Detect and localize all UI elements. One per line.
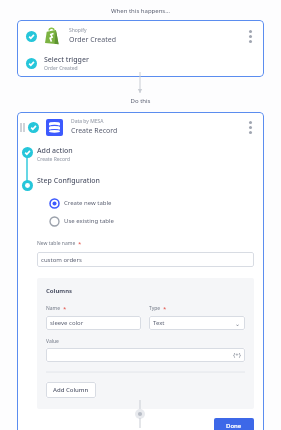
staticText: Text — [153, 319, 235, 327]
button[interactable]: Data by MESA — [17, 112, 264, 142]
staticText: sleeve color — [50, 319, 137, 327]
button[interactable]: Add step — [135, 409, 145, 419]
staticText: Order Created — [44, 65, 78, 72]
staticText: * — [78, 240, 82, 248]
staticText: Columns — [46, 287, 73, 295]
button[interactable]: Select trigger — [17, 52, 264, 74]
staticText: When this happens… — [0, 7, 281, 15]
button[interactable]: custom orders — [37, 252, 254, 267]
staticText: {+} — [233, 351, 241, 359]
staticText: Create Record — [71, 126, 118, 136]
staticText: Use existing table — [64, 217, 114, 225]
staticText: Name — [46, 305, 61, 312]
button[interactable]: Text — [149, 316, 245, 330]
button[interactable]: Add action — [37, 146, 254, 163]
button[interactable]: Add Column — [46, 382, 96, 398]
button[interactable]: Done — [214, 418, 254, 430]
staticText: ⌄ — [235, 320, 241, 327]
staticText: * — [63, 305, 67, 313]
staticText: Shopify — [69, 27, 87, 34]
staticText: Add action — [37, 146, 73, 156]
staticText: Create new table — [64, 199, 112, 207]
staticText: custom orders — [41, 256, 250, 264]
staticText: Create Record — [37, 156, 71, 163]
button[interactable]: sleeve color — [46, 316, 141, 330]
button[interactable]: More options for Create Record action — [243, 118, 257, 136]
button[interactable]: Create new table — [50, 196, 254, 210]
staticText: Data by MESA — [71, 118, 104, 125]
staticText: * — [163, 305, 167, 313]
staticText: New table name — [37, 240, 76, 247]
staticText: Type — [149, 305, 161, 312]
staticText: Select trigger — [44, 55, 89, 65]
button[interactable]: Step Configuration — [37, 176, 254, 186]
staticText: Done — [226, 422, 242, 430]
button[interactable]: Shopify — [17, 20, 264, 52]
staticText: Add Column — [53, 386, 89, 394]
button[interactable]: {+} — [46, 348, 245, 362]
staticText: Value — [46, 338, 59, 345]
button[interactable]: Use existing table — [50, 214, 254, 228]
staticText: Do this — [0, 97, 281, 105]
staticText: Order Created — [69, 35, 117, 45]
button[interactable]: More options for Shopify trigger — [243, 27, 257, 45]
